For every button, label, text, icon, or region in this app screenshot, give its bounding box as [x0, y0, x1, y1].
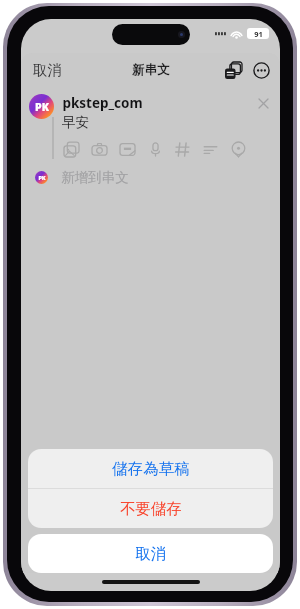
button[interactable]: Record audio: [146, 140, 165, 159]
staticText: 91: [254, 29, 263, 39]
button[interactable]: Camera: [90, 140, 109, 159]
button[interactable]: Add location: [229, 140, 248, 159]
staticText: PK: [38, 174, 46, 181]
button[interactable]: More options: [250, 59, 272, 81]
staticText: 不要儲存: [120, 499, 182, 519]
button[interactable]: Remove: [254, 94, 272, 112]
button[interactable]: 儲存為草稿: [28, 449, 273, 488]
button[interactable]: 取消: [30, 58, 65, 82]
staticText: pkstep_com: [62, 94, 143, 112]
button[interactable]: Add tag: [173, 140, 192, 159]
button[interactable]: Multiple posts: [222, 59, 244, 81]
staticText: PK: [35, 100, 49, 114]
button[interactable]: Add photo: [62, 140, 81, 159]
staticText: 取消: [33, 61, 62, 79]
staticText: 早安: [62, 114, 89, 131]
button[interactable]: Create poll: [201, 140, 220, 159]
staticText: 新增到串文: [61, 169, 129, 186]
button[interactable]: 取消: [28, 534, 273, 573]
staticText: 新串文: [132, 62, 170, 78]
button[interactable]: PK: [29, 168, 272, 187]
button[interactable]: 不要儲存: [28, 489, 273, 528]
staticText: 取消: [135, 544, 166, 564]
button[interactable]: Add GIF: [118, 140, 137, 159]
staticText: 儲存為草稿: [112, 459, 190, 479]
